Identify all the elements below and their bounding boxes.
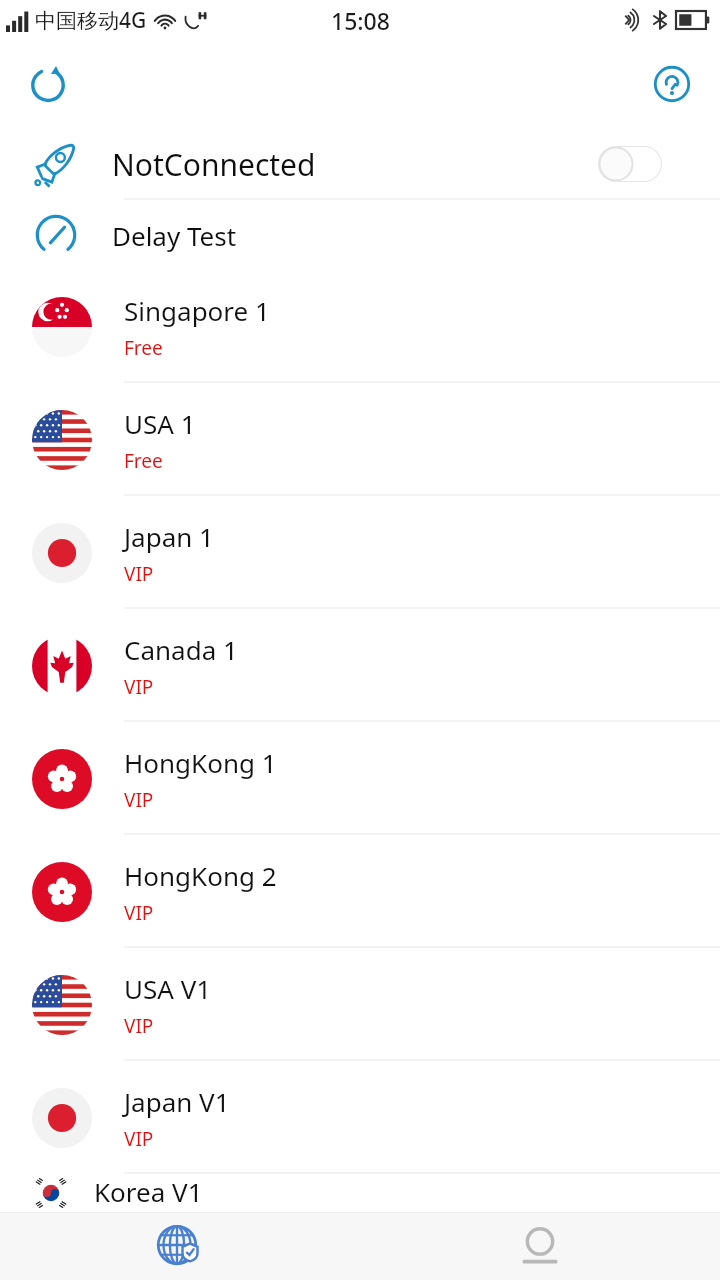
staticText: Free bbox=[124, 448, 163, 474]
button[interactable]: USA V1 bbox=[0, 948, 720, 1061]
staticText: USA 1 bbox=[124, 406, 196, 441]
staticText: Japan 1 bbox=[124, 519, 214, 554]
button[interactable]: Canada 1 bbox=[0, 609, 720, 722]
staticText: VIP bbox=[124, 900, 154, 926]
button[interactable]: VPN bbox=[0, 1213, 360, 1280]
button[interactable]: Singapore 1 bbox=[0, 270, 720, 383]
staticText: VIP bbox=[124, 561, 154, 587]
staticText: VIP bbox=[124, 787, 154, 813]
button[interactable]: Korea V1 bbox=[0, 1174, 720, 1212]
button[interactable]: HongKong 1 bbox=[0, 722, 720, 835]
staticText: HongKong 2 bbox=[124, 858, 277, 893]
staticText: HongKong 1 bbox=[124, 745, 277, 780]
button[interactable]: USA 1 bbox=[0, 383, 720, 496]
button[interactable]: Help bbox=[644, 56, 700, 112]
staticText: VIP bbox=[124, 1013, 154, 1039]
staticText: USA V1 bbox=[124, 971, 212, 1006]
staticText: Japan V1 bbox=[124, 1084, 230, 1119]
button[interactable]: Japan V1 bbox=[0, 1061, 720, 1174]
staticText: Korea V1 bbox=[94, 1174, 203, 1209]
button[interactable]: HongKong 2 bbox=[0, 835, 720, 948]
button[interactable]: Refresh bbox=[18, 54, 78, 114]
staticText: Canada 1 bbox=[124, 632, 238, 667]
staticText: NotConnected bbox=[112, 144, 316, 185]
button[interactable]: Japan 1 bbox=[0, 496, 720, 609]
staticText: 15:08 bbox=[331, 5, 390, 36]
staticText: VIP bbox=[124, 674, 154, 700]
button[interactable]: Delay Test bbox=[0, 200, 720, 270]
button[interactable]: NotConnected bbox=[0, 128, 720, 200]
button[interactable]: Profile bbox=[360, 1213, 720, 1280]
staticText: 中国移动4G bbox=[35, 6, 147, 35]
staticText: Delay Test bbox=[112, 218, 237, 253]
staticText: Singapore 1 bbox=[124, 293, 270, 328]
button[interactable]: Connect toggle bbox=[598, 146, 662, 182]
staticText: Free bbox=[124, 335, 163, 361]
staticText: VIP bbox=[124, 1126, 154, 1152]
